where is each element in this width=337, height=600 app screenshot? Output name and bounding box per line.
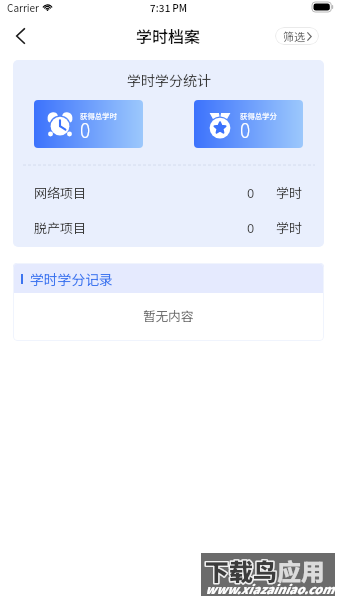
staticText: 0 [80,116,91,144]
staticText: 下载鸟 [205,553,277,588]
button[interactable]: 筛选 [275,27,319,45]
staticText: 获得总学分 [240,110,277,121]
staticText: 学时学分记录 [30,269,113,289]
staticText: 获得总学时 [80,110,117,121]
staticText: www.xiazainiao.com [205,580,334,598]
staticText: 0 [247,183,255,202]
staticText: 学时 [276,218,303,237]
staticText: 网络项目 [34,183,87,202]
staticText: 学时 [276,183,303,202]
staticText: 0 [240,116,251,144]
staticText: 筛选 [283,28,305,44]
button[interactable]: 脱产项目 [13,210,324,245]
staticText: Carrier [7,0,39,14]
staticText: 下载鸟 [205,553,277,588]
staticText: 脱产项目 [34,218,87,237]
staticText: 学时档案 [136,24,201,47]
staticText: 暂无内容 [143,306,194,324]
button[interactable]: Back [6,22,34,50]
button[interactable]: 获得总学时 [34,100,143,148]
staticText: 学时学分统计 [127,70,211,90]
staticText: 0 [247,218,255,237]
staticText: 应用 [277,553,325,588]
button[interactable]: 获得总学分 [194,100,303,148]
button[interactable]: 网络项目 [13,175,324,210]
staticText: 7:31 PM [150,0,188,14]
button[interactable]: 学时学分记录 [13,263,324,293]
